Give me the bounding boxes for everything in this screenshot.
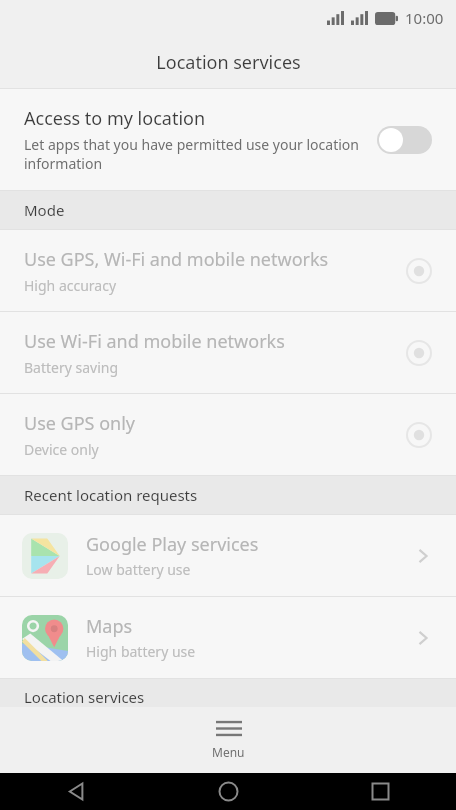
button[interactable]: Access to my location — [0, 89, 456, 190]
button[interactable]: Use GPS, Wi-Fi and mobile networks — [0, 230, 456, 311]
staticText: Let apps that you have permitted use you… — [24, 135, 365, 173]
button[interactable]: Use Wi-Fi and mobile networks — [0, 312, 456, 393]
button[interactable]: Google Play services — [0, 515, 456, 596]
button[interactable]: Home — [152, 773, 304, 810]
button[interactable]: Use GPS only — [0, 394, 456, 475]
staticText: Location services — [156, 50, 301, 75]
staticText: Google Play services — [86, 532, 259, 557]
staticText: Low battery use — [86, 560, 191, 579]
staticText: Access to my location — [24, 106, 206, 131]
staticText: Recent location requests — [24, 485, 198, 505]
button[interactable]: Access to my location toggle — [377, 126, 432, 154]
staticText: Maps — [86, 614, 133, 639]
button[interactable]: Recents — [304, 773, 456, 810]
staticText: Menu — [212, 744, 245, 760]
button[interactable]: Maps — [0, 597, 456, 678]
staticText: 10:00 — [405, 8, 444, 28]
staticText: Location services — [24, 687, 145, 707]
staticText: Device only — [24, 440, 99, 459]
staticText: High accuracy — [24, 276, 117, 295]
staticText: Mode — [24, 200, 65, 220]
staticText: Use Wi-Fi and mobile networks — [24, 329, 285, 354]
button[interactable]: Menu — [0, 707, 456, 773]
staticText: Use GPS, Wi-Fi and mobile networks — [24, 247, 329, 272]
button[interactable]: Back — [0, 773, 152, 810]
staticText: Battery saving — [24, 358, 119, 377]
staticText: High battery use — [86, 642, 196, 661]
staticText: Use GPS only — [24, 411, 136, 436]
